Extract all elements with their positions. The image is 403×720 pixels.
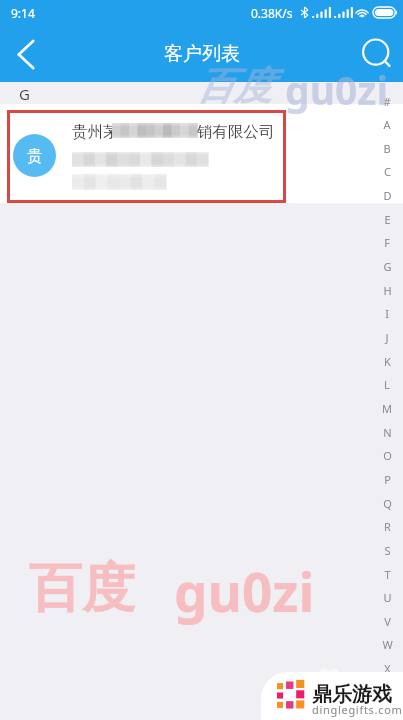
button[interactable]: G [377, 255, 397, 278]
staticText: L [384, 377, 390, 392]
staticText: J [385, 330, 389, 345]
staticText: gu0zi [174, 555, 315, 627]
button[interactable]: V [377, 610, 397, 633]
button[interactable]: Q [377, 492, 397, 515]
staticText: F [384, 235, 390, 250]
staticText: O [383, 448, 392, 463]
staticText: N [383, 425, 392, 440]
button[interactable]: Back [0, 28, 52, 80]
staticText: A [383, 117, 391, 132]
button[interactable]: C [377, 160, 397, 183]
staticText: K [384, 354, 391, 369]
staticText: 销有限公司 [197, 122, 275, 142]
button[interactable]: # [377, 90, 397, 113]
staticText: G [19, 84, 30, 104]
button[interactable]: P [377, 468, 397, 491]
staticText: M [382, 401, 392, 416]
staticText: 鼎乐游戏 [312, 682, 392, 707]
button[interactable]: W [377, 633, 397, 656]
staticText: 客户列表 [164, 42, 240, 66]
staticText: S [384, 543, 391, 558]
button[interactable]: I [377, 302, 397, 325]
button[interactable]: Search [351, 28, 403, 80]
staticText: Q [383, 496, 392, 511]
staticText: 百度 [196, 62, 272, 110]
button[interactable]: Z [377, 704, 397, 720]
button[interactable]: M [377, 397, 397, 420]
button[interactable]: E [377, 208, 397, 231]
button[interactable]: J [377, 326, 397, 349]
staticText: Y [384, 685, 391, 700]
staticText: C [384, 164, 391, 179]
button[interactable]: K [377, 350, 397, 373]
button[interactable]: N [377, 421, 397, 444]
staticText: 贵州茅 [72, 122, 119, 142]
staticText: U [383, 590, 392, 605]
staticText: I [385, 306, 389, 321]
staticText: 0.38K/s [251, 5, 293, 21]
staticText: G [383, 259, 392, 274]
button[interactable]: T [377, 563, 397, 586]
staticText: gu0zi [285, 63, 389, 116]
staticText: dinglegifts.com [312, 702, 403, 717]
button[interactable]: O [377, 444, 397, 467]
staticText: 9:14 [11, 5, 35, 21]
button[interactable]: 贵 [0, 104, 403, 203]
staticText: W [382, 637, 393, 652]
staticText: B [383, 141, 391, 156]
button[interactable]: H [377, 279, 397, 302]
staticText: E [384, 212, 391, 227]
button[interactable]: R [377, 515, 397, 538]
staticText: 贵 [27, 146, 43, 166]
staticText: D [383, 188, 392, 203]
button[interactable]: X [377, 657, 397, 680]
button[interactable]: B [377, 137, 397, 160]
button[interactable]: U [377, 586, 397, 609]
staticText: R [384, 519, 391, 534]
staticText: # [383, 94, 391, 109]
button[interactable]: D [377, 184, 397, 207]
button[interactable]: A [377, 113, 397, 136]
button[interactable]: L [377, 373, 397, 396]
staticText: X [384, 661, 391, 676]
staticText: V [384, 614, 391, 629]
staticText: Z [384, 708, 391, 720]
staticText: H [383, 283, 392, 298]
button[interactable]: F [377, 231, 397, 254]
staticText: T [384, 567, 391, 582]
button[interactable]: Y [377, 681, 397, 704]
staticText: 百度 [29, 555, 135, 622]
button[interactable]: S [377, 539, 397, 562]
staticText: P [384, 472, 391, 487]
